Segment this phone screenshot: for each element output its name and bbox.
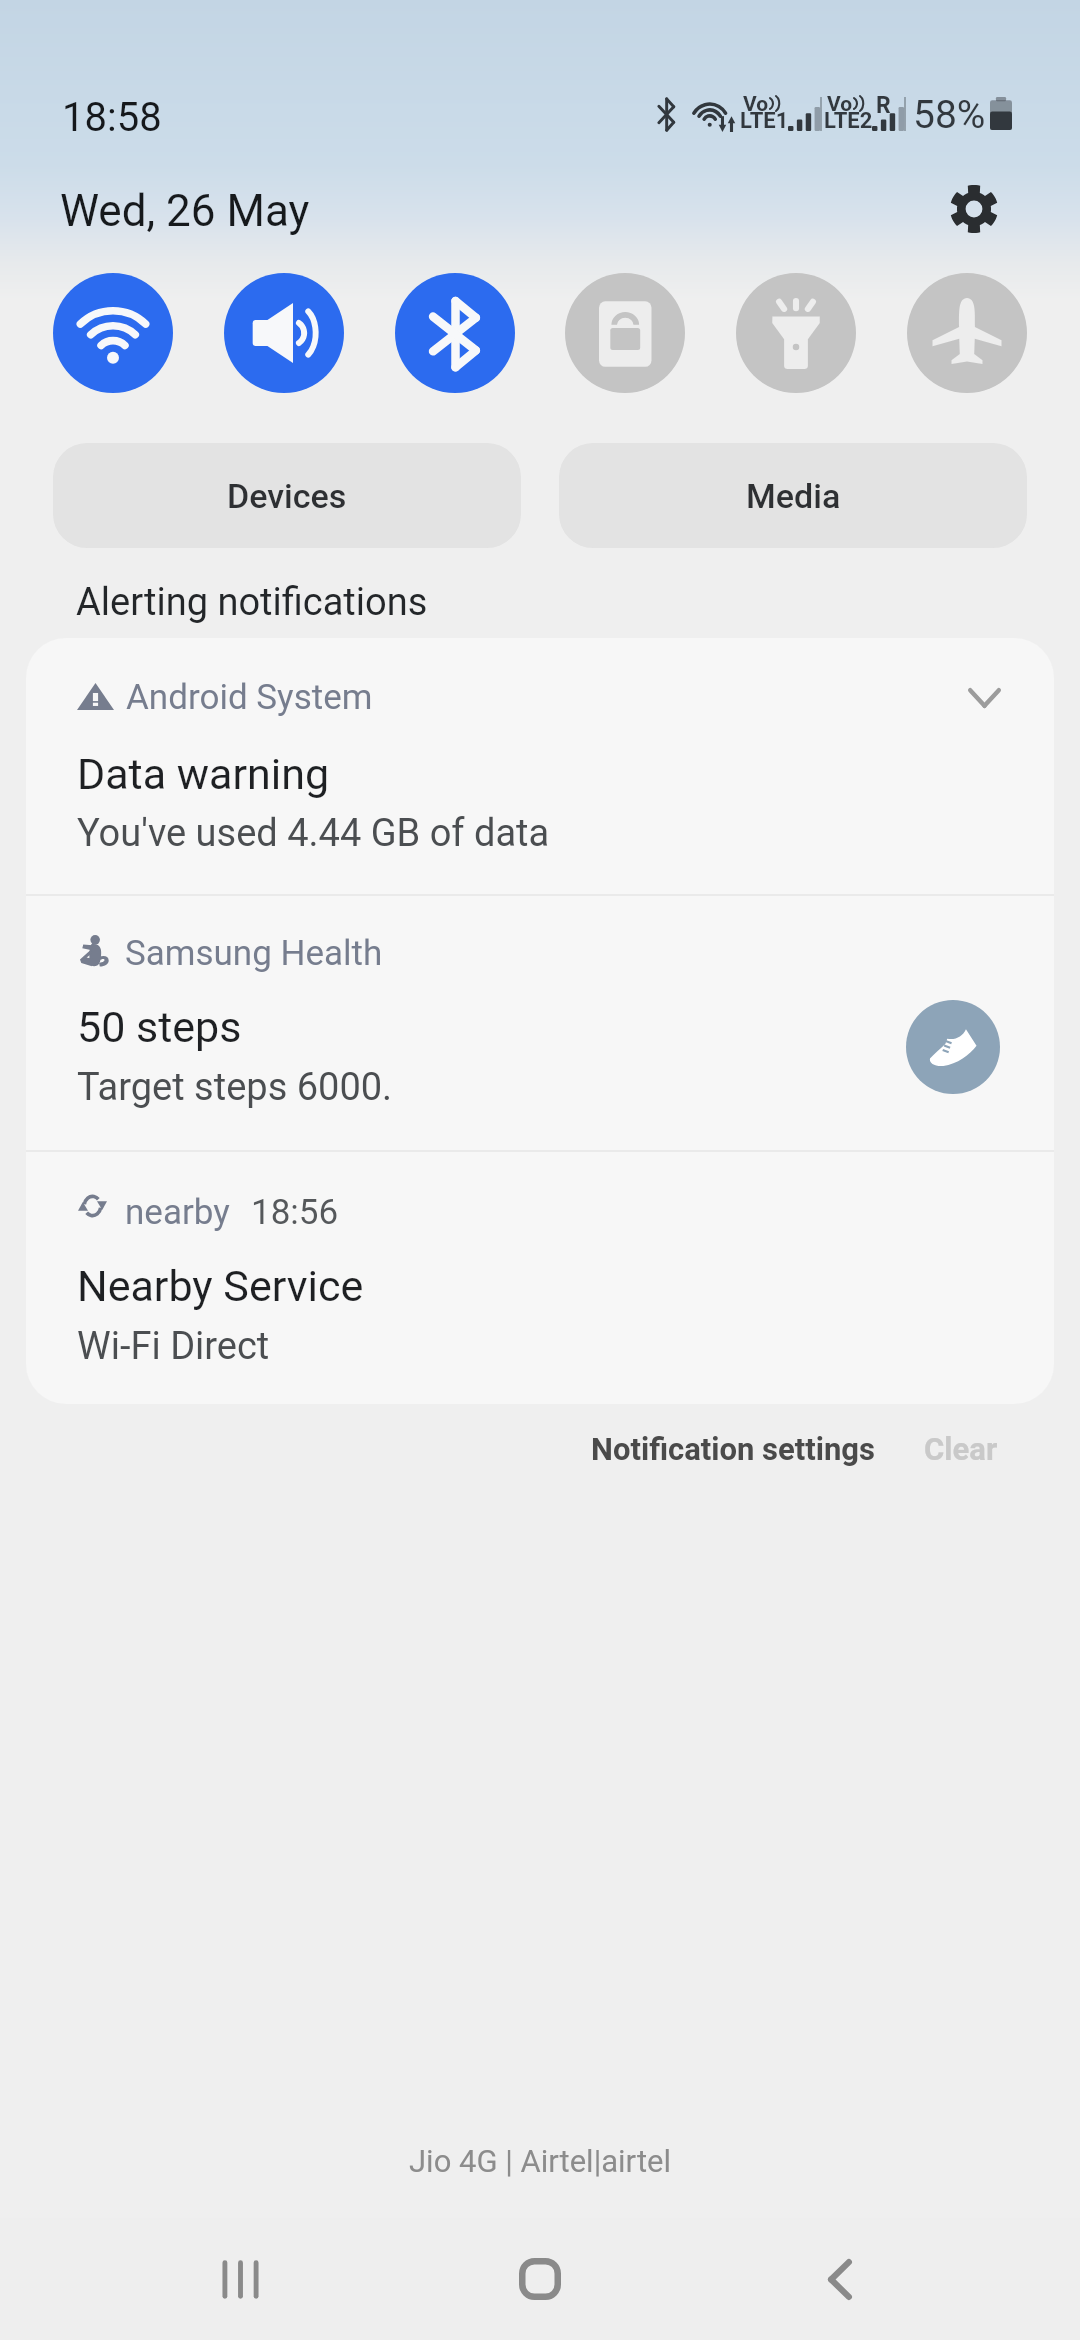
staticText: 18:58	[62, 94, 162, 141]
button[interactable]: Media	[559, 443, 1027, 548]
staticText: Android System	[126, 677, 373, 718]
staticText: R	[876, 92, 891, 119]
button[interactable]: Screen lock	[565, 273, 685, 393]
staticText: Media	[746, 476, 841, 516]
staticText: Samsung Health	[125, 933, 383, 974]
button[interactable]: Flashlight	[736, 273, 856, 393]
button[interactable]: Clear	[904, 1411, 1018, 1487]
staticText: Data warning	[77, 749, 330, 799]
staticText: 18:56	[251, 1192, 339, 1233]
button[interactable]: Settings	[941, 176, 1007, 242]
staticText: 58%	[913, 92, 986, 138]
staticText: Target steps 6000.	[77, 1065, 393, 1110]
staticText: Devices	[227, 476, 347, 516]
button[interactable]: Steps	[906, 1000, 1000, 1094]
staticText: nearby	[125, 1192, 230, 1233]
staticText: LTE1	[740, 108, 789, 134]
staticText: LTE2	[824, 108, 873, 134]
staticText: Nearby Service	[77, 1261, 364, 1311]
staticText: Wi-Fi Direct	[77, 1324, 270, 1369]
button[interactable]: Back	[750, 2218, 930, 2340]
staticText: 50 steps	[77, 1002, 242, 1052]
staticText: Vo	[827, 92, 853, 117]
button[interactable]: Bluetooth	[395, 273, 515, 393]
staticText: Wed, 26 May	[60, 185, 310, 237]
staticText: Vo	[743, 92, 769, 117]
staticText: Jio 4G | Airtel|airtel	[0, 2143, 1080, 2179]
staticText: You've used 4.44 GB of data	[77, 811, 550, 856]
button[interactable]: Samsung Health	[26, 896, 1054, 1150]
button[interactable]: nearby	[26, 1152, 1054, 1404]
staticText: Notification settings	[591, 1431, 875, 1467]
button[interactable]: Devices	[53, 443, 521, 548]
button[interactable]: Wi-Fi	[53, 273, 173, 393]
button[interactable]: Home	[450, 2218, 630, 2340]
button[interactable]: Recents	[150, 2218, 330, 2340]
staticText: Clear	[924, 1431, 998, 1467]
staticText: Alerting notifications	[76, 580, 428, 625]
button[interactable]: Expand	[948, 662, 1020, 734]
button[interactable]: Android System	[26, 638, 1054, 894]
button[interactable]: Flight mode	[907, 273, 1027, 393]
button[interactable]: Sound	[224, 273, 344, 393]
button[interactable]: Notification settings	[571, 1411, 895, 1487]
